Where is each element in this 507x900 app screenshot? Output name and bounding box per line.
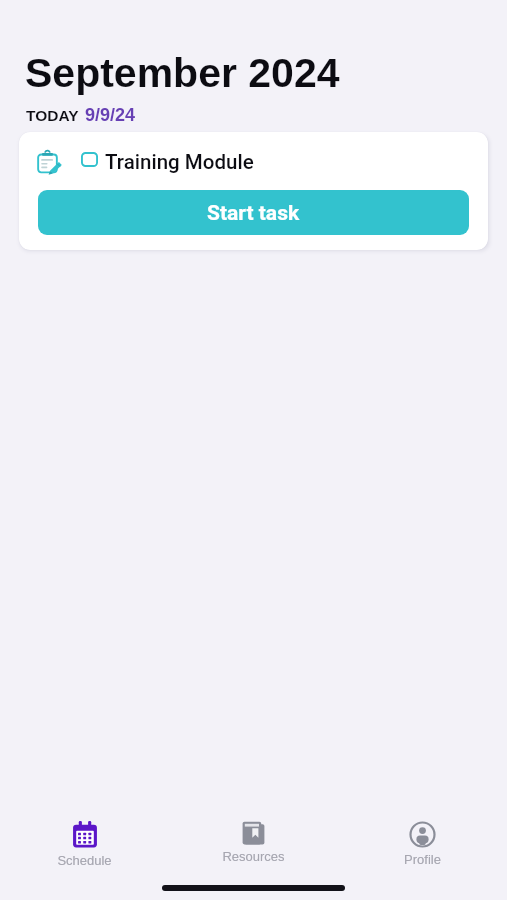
- staticText: Resources: [222, 849, 285, 864]
- button[interactable]: Resources: [169, 818, 338, 867]
- staticText: Training Module: [105, 150, 254, 174]
- staticText: Schedule: [57, 853, 112, 868]
- other: Schedule: [71, 821, 99, 849]
- staticText: September 2024: [25, 50, 340, 96]
- staticText: Profile: [404, 852, 441, 867]
- staticText: 9/9/24: [85, 105, 136, 125]
- other: Profile: [409, 821, 436, 848]
- button[interactable]: Profile: [338, 818, 507, 870]
- staticText: TODAY: [26, 107, 79, 124]
- button[interactable]: Start task: [38, 190, 469, 235]
- button[interactable]: [81, 152, 98, 167]
- other: Resources: [242, 821, 265, 845]
- button[interactable]: Schedule: [0, 818, 169, 871]
- staticText: Start task: [207, 201, 300, 226]
